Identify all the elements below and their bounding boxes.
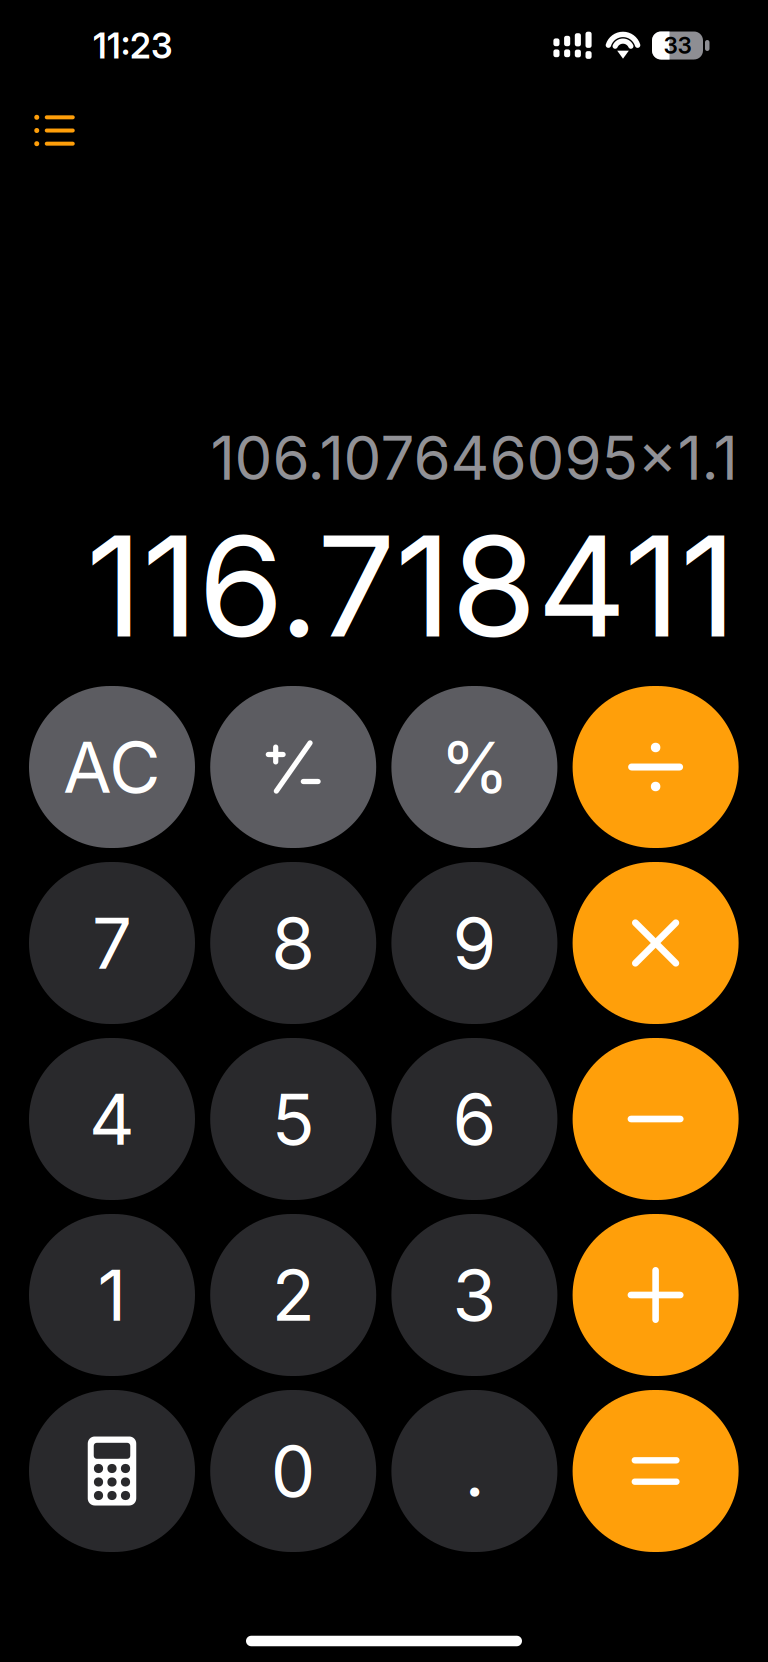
button[interactable]: 7 [29,862,195,1024]
button[interactable]: 0 [210,1390,376,1552]
staticText: 1 [97,1252,126,1338]
button[interactable]: Calculator [29,1390,195,1552]
button[interactable]: Multiply [573,862,739,1024]
button[interactable]: Divide [573,686,739,848]
staticText: 106.107646095×1.1 [210,422,737,494]
staticText: 4 [89,1076,135,1162]
button[interactable]: Show history [8,86,100,174]
staticText: 11:23 [93,25,173,67]
button[interactable]: 9 [391,862,557,1024]
staticText: 33 [663,32,691,59]
button[interactable]: Equals [573,1390,739,1552]
button[interactable]: 4 [29,1038,195,1200]
staticText: 0 [271,1428,316,1514]
button[interactable]: Add [573,1214,739,1376]
button[interactable]: 6 [391,1038,557,1200]
staticText: 5 [272,1076,315,1162]
button[interactable]: Percent [391,686,557,848]
button[interactable]: 1 [29,1214,195,1376]
staticText: 116.718411 [86,502,736,670]
button[interactable]: 2 [210,1214,376,1376]
staticText: % [440,724,509,810]
staticText: AC [63,724,161,810]
staticText: . [464,1428,484,1514]
button[interactable]: Decimal point [391,1390,557,1552]
staticText: 3 [452,1252,496,1338]
button[interactable]: Toggle sign [210,686,376,848]
staticText: 2 [272,1252,315,1338]
button[interactable]: 5 [210,1038,376,1200]
button[interactable]: All clear [29,686,195,848]
button[interactable]: 8 [210,862,376,1024]
staticText: 9 [452,900,496,986]
staticText: 7 [92,900,132,986]
staticText: 8 [271,900,315,986]
staticText: 6 [452,1076,496,1162]
button[interactable]: Subtract [573,1038,739,1200]
button[interactable]: 3 [391,1214,557,1376]
